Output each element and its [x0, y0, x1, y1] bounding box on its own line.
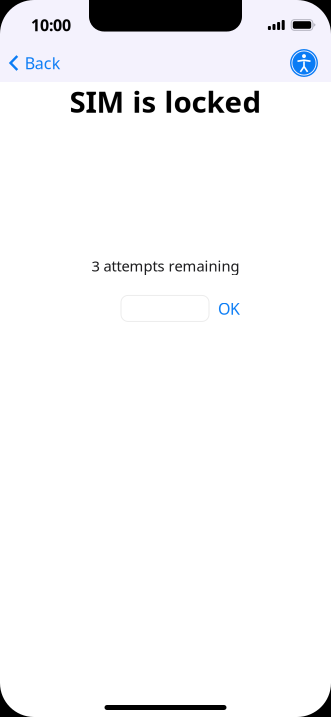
staticText: 3 attempts remaining — [91, 256, 239, 275]
staticText: Back — [25, 52, 61, 74]
staticText: SIM is locked — [69, 82, 261, 121]
staticText: 10:00 — [31, 14, 71, 36]
button[interactable]: Back — [0, 46, 71, 80]
button[interactable]: Accessibility — [290, 49, 331, 77]
staticText: OK — [218, 298, 240, 319]
button[interactable]: OK — [209, 295, 248, 321]
